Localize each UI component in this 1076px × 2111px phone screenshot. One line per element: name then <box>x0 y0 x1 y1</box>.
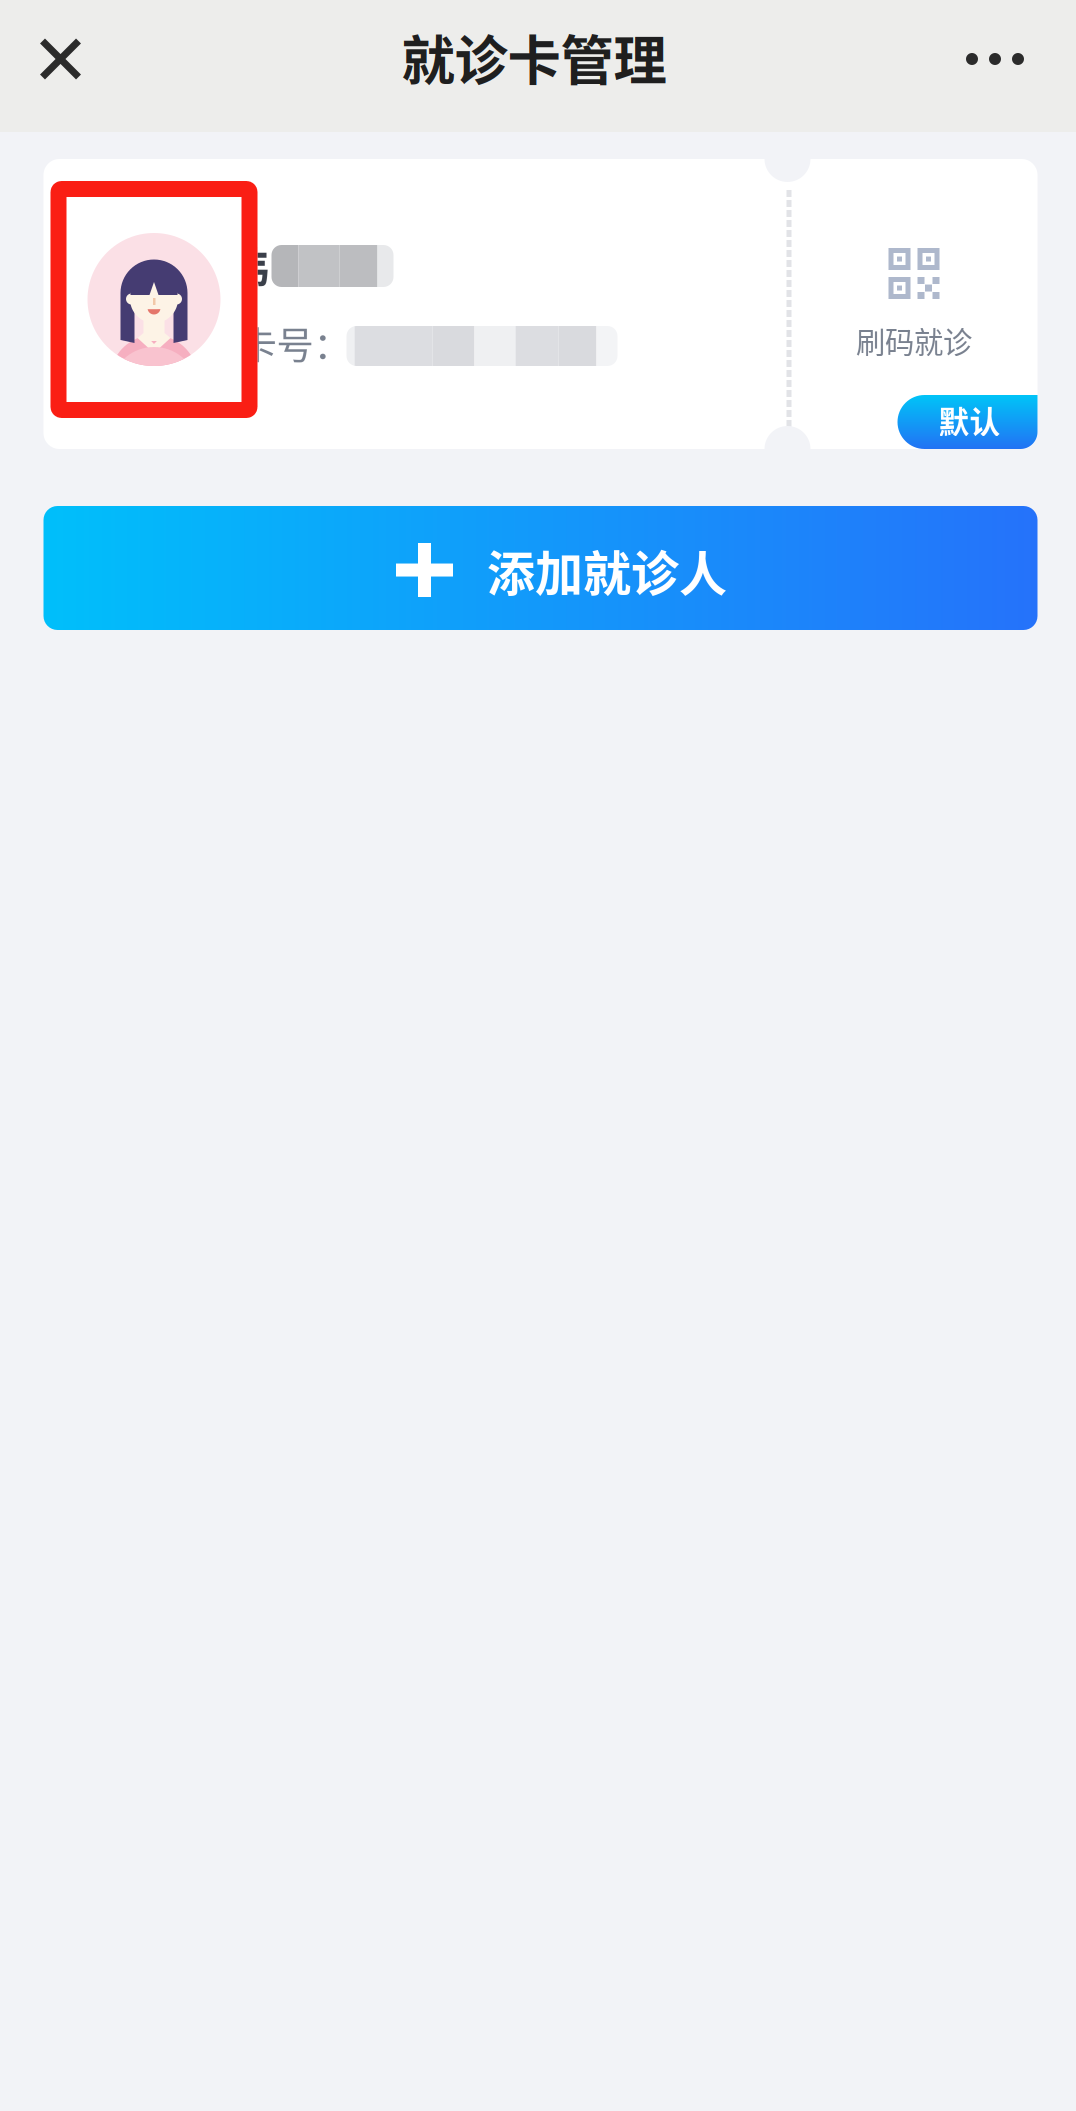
staticText: 韩 <box>223 233 268 299</box>
button[interactable]: Close <box>0 0 121 118</box>
staticText: 刷码就诊 <box>856 319 972 361</box>
button[interactable]: 添加就诊人 <box>43 506 1037 630</box>
button[interactable]: 默认 <box>897 395 1037 449</box>
staticText: 添加就诊人 <box>487 535 727 605</box>
staticText: 就诊卡管理 <box>401 18 666 96</box>
button[interactable]: More <box>914 0 1076 118</box>
staticText: 默认 <box>938 398 1000 442</box>
staticText: 卡号： <box>239 316 350 370</box>
